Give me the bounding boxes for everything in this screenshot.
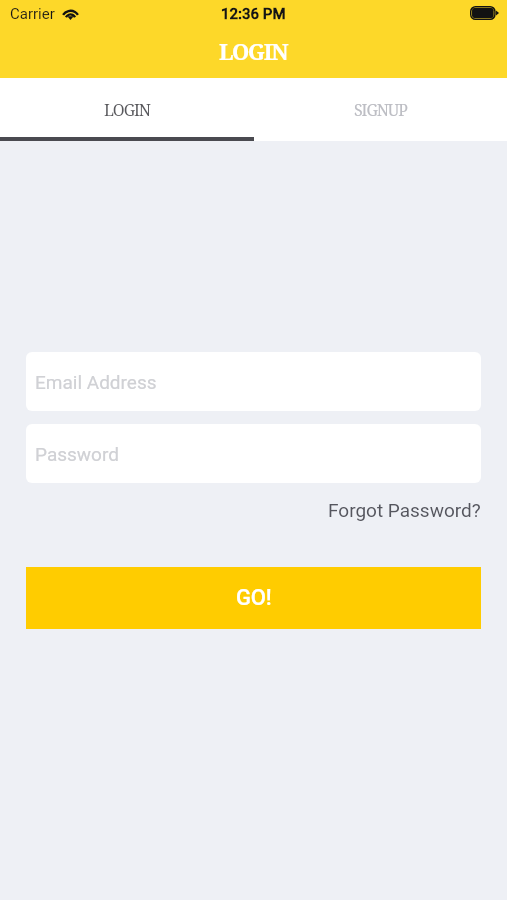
staticText: SIGNUP — [354, 99, 407, 121]
staticText: GO! — [236, 585, 272, 611]
button[interactable]: Forgot Password? — [328, 495, 481, 525]
button[interactable]: SIGNUP — [253, 78, 507, 141]
staticText: LOGIN — [219, 36, 288, 66]
button[interactable]: LOGIN — [0, 78, 253, 141]
staticText: 12:36 PM — [221, 5, 286, 23]
other: Wi-Fi signal — [61, 5, 80, 19]
staticText: Forgot Password? — [328, 499, 481, 521]
button[interactable]: Password — [26, 424, 481, 483]
button[interactable]: GO! — [26, 567, 481, 629]
staticText: LOGIN — [104, 99, 150, 121]
button[interactable]: Email Address — [26, 352, 481, 411]
other: Battery full — [470, 6, 499, 20]
staticText: Password — [35, 443, 119, 465]
staticText: Carrier — [10, 5, 55, 23]
staticText: Email Address — [35, 371, 157, 393]
